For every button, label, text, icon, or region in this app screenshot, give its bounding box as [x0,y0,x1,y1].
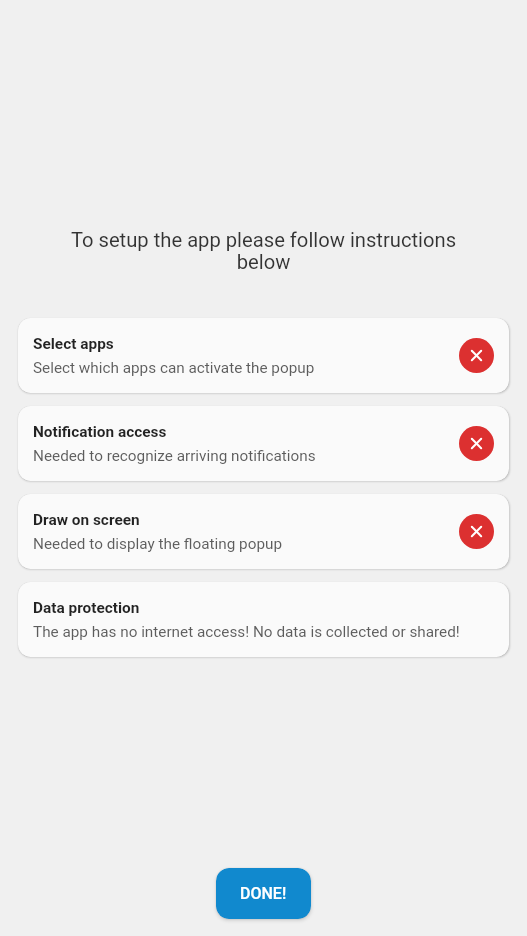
button[interactable]: Notification access [18,406,509,481]
button[interactable]: Draw on screen [18,494,509,569]
button[interactable]: Select apps [18,318,509,393]
staticText: To setup the app please follow instructi… [59,228,468,274]
staticText: Data protection [33,599,140,617]
staticText: Notification access [33,423,167,441]
button[interactable]: Data protection [18,582,509,657]
button[interactable]: DONE! [216,868,311,919]
staticText: Draw on screen [33,511,140,529]
staticText: Needed to recognize arriving notificatio… [33,447,316,465]
staticText: Select apps [33,335,114,353]
staticText: DONE! [240,884,287,903]
staticText: Needed to display the floating popup [33,535,283,553]
staticText: The app has no internet access! No data … [33,623,460,641]
staticText: Select which apps can activate the popup [33,359,315,377]
button[interactable]: Permission not granted [459,338,494,373]
button[interactable]: Permission not granted [459,514,494,549]
button[interactable]: Permission not granted [459,426,494,461]
